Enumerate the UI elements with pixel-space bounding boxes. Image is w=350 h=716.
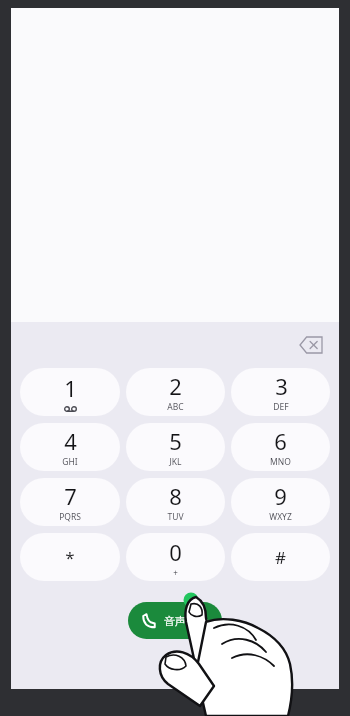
button[interactable]: * (20, 533, 120, 581)
staticText: 2 (169, 371, 182, 401)
button[interactable]: 4 (20, 423, 120, 471)
staticText: 1 (64, 373, 77, 403)
staticText: 5 (169, 426, 182, 456)
button[interactable]: 音声通話 (128, 602, 222, 639)
staticText: ABC (167, 401, 184, 413)
staticText: # (275, 546, 286, 569)
button[interactable]: 2 (126, 368, 225, 416)
staticText: 音声通話 (164, 614, 208, 628)
staticText: MNO (270, 456, 291, 468)
staticText: 6 (274, 426, 287, 456)
staticText: 0 (169, 537, 182, 567)
button[interactable]: # (231, 533, 330, 581)
button[interactable]: 6 (231, 423, 330, 471)
button[interactable]: 5 (126, 423, 225, 471)
staticText: 4 (64, 426, 77, 456)
staticText: DEF (273, 401, 289, 413)
staticText: 9 (274, 481, 287, 511)
staticText: GHI (62, 456, 78, 468)
button[interactable]: 7 (20, 478, 120, 526)
staticText: WXYZ (269, 511, 292, 523)
button[interactable]: 0 (126, 533, 225, 581)
staticText: 8 (169, 481, 182, 511)
staticText: 3 (275, 371, 288, 401)
staticText: 7 (64, 481, 77, 511)
staticText: PQRS (59, 511, 81, 523)
button[interactable]: 8 (126, 478, 225, 526)
staticText: + (173, 567, 178, 578)
button[interactable]: 9 (231, 478, 330, 526)
button[interactable]: 3 (231, 368, 330, 416)
button[interactable]: 1 (20, 368, 120, 416)
button[interactable]: Backspace (291, 325, 331, 365)
staticText: * (65, 546, 75, 569)
staticText: JKL (169, 456, 182, 468)
staticText: TUV (167, 511, 184, 523)
